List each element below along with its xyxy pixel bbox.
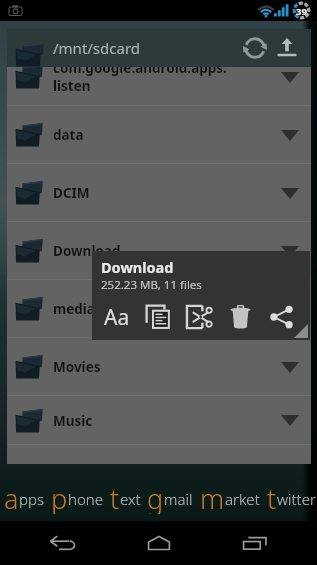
staticText: listen: [53, 77, 91, 95]
button[interactable]: g: [147, 480, 193, 514]
staticText: DCIM: [53, 184, 90, 202]
staticText: 39: [296, 5, 307, 18]
button[interactable]: Share: [261, 298, 301, 336]
staticText: pps: [19, 489, 44, 509]
staticText: t: [110, 480, 120, 514]
staticText: Download: [53, 242, 121, 260]
staticText: Download: [101, 257, 174, 277]
staticText: 252.23 MB, 11 files: [101, 277, 202, 293]
button[interactable]: p: [51, 480, 103, 514]
button[interactable]: data: [7, 106, 311, 164]
staticText: Music: [53, 412, 93, 430]
button[interactable]: Rename: [97, 298, 137, 336]
button[interactable]: Home: [124, 522, 194, 564]
button[interactable]: t: [110, 480, 141, 514]
button[interactable]: Cut: [179, 298, 219, 336]
staticText: ext: [120, 489, 141, 509]
button[interactable]: m: [200, 480, 260, 514]
staticText: arket: [225, 489, 260, 509]
staticText: Movies: [53, 358, 101, 376]
staticText: hone: [68, 489, 103, 509]
button[interactable]: a: [4, 480, 44, 514]
staticText: witter: [277, 489, 316, 509]
button[interactable]: Go up: [271, 29, 303, 67]
staticText: m: [200, 480, 225, 514]
button[interactable]: DCIM: [7, 164, 311, 222]
staticText: mail: [164, 489, 193, 509]
staticText: p: [51, 480, 68, 514]
staticText: a: [4, 480, 19, 514]
button[interactable]: Delete: [220, 298, 260, 336]
button[interactable]: Refresh: [239, 29, 271, 67]
staticText: Aa: [104, 303, 130, 332]
button[interactable]: Copy: [138, 298, 178, 336]
button[interactable]: Back: [27, 522, 97, 564]
staticText: /mnt/sdcard: [53, 38, 141, 58]
button[interactable]: t: [267, 480, 316, 514]
button[interactable]: media: [7, 280, 311, 338]
button[interactable]: Music: [7, 396, 311, 445]
button[interactable]: Recent apps: [220, 522, 290, 564]
button[interactable]: com.google.android.apps.: [7, 67, 311, 106]
staticText: com.google.android.apps.: [53, 67, 227, 77]
staticText: t: [267, 480, 277, 514]
staticText: data: [53, 126, 84, 144]
staticText: media: [53, 300, 95, 318]
button[interactable]: /mnt/sdcard: [7, 29, 311, 67]
button[interactable]: Download: [7, 222, 311, 280]
button[interactable]: Movies: [7, 338, 311, 396]
staticText: g: [147, 480, 164, 514]
